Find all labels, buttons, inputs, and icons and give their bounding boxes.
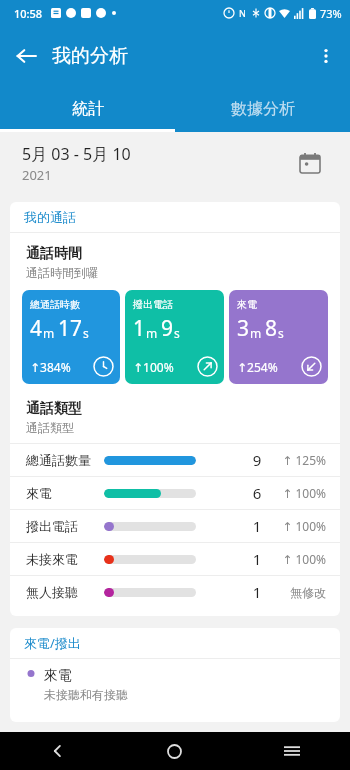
staticText: 1 bbox=[246, 582, 268, 602]
staticText: 撥出電話 bbox=[26, 518, 104, 534]
staticText: 9 bbox=[161, 314, 174, 343]
staticText: 總通話時數 bbox=[30, 298, 80, 311]
staticText: 73% bbox=[320, 6, 342, 21]
staticText: ↑ 100% bbox=[274, 518, 326, 534]
staticText: s bbox=[83, 325, 89, 341]
staticText: 5月 03 - 5月 10 bbox=[22, 143, 131, 165]
staticText: m bbox=[146, 325, 161, 341]
staticText: 通話類型 bbox=[26, 420, 74, 435]
button[interactable]: Recent apps bbox=[233, 732, 350, 770]
button[interactable]: Back bbox=[0, 30, 52, 82]
staticText: 4 bbox=[30, 314, 43, 343]
staticText: 8 bbox=[265, 314, 278, 343]
button[interactable]: Back bbox=[0, 732, 116, 770]
staticText: 來電 bbox=[237, 298, 257, 311]
staticText: 10:58 bbox=[14, 6, 43, 21]
staticText: 來電 bbox=[26, 485, 104, 501]
staticText: 1 bbox=[246, 516, 268, 536]
staticText: m bbox=[250, 325, 265, 341]
staticText: 無修改 bbox=[274, 585, 326, 600]
staticText: 來電/撥出 bbox=[24, 634, 81, 652]
staticText: ↑100% bbox=[133, 359, 174, 375]
staticText: 通話類型 bbox=[26, 400, 82, 418]
button[interactable]: 統計 bbox=[0, 86, 175, 132]
button[interactable]: Home bbox=[116, 732, 233, 770]
staticText: 1 bbox=[133, 314, 146, 343]
staticText: 撥出電話 bbox=[133, 298, 173, 311]
staticText: 統計 bbox=[72, 99, 104, 119]
button[interactable]: 數據分析 bbox=[175, 86, 350, 132]
staticText: 總通話數量 bbox=[26, 452, 104, 468]
staticText: ↑ 100% bbox=[274, 551, 326, 567]
staticText: 2021 bbox=[22, 166, 52, 184]
button[interactable]: 來電 bbox=[10, 477, 340, 509]
staticText: 3 bbox=[237, 314, 250, 343]
staticText: s bbox=[174, 325, 180, 341]
button[interactable]: 總通話數量 bbox=[10, 444, 340, 476]
staticText: 通話時間 bbox=[26, 245, 82, 263]
button[interactable]: 無人接聽 bbox=[10, 576, 340, 608]
staticText: 17 bbox=[58, 314, 83, 343]
staticText: 1 bbox=[246, 549, 268, 569]
staticText: 未接來電 bbox=[26, 551, 104, 567]
staticText: ↑ 100% bbox=[274, 485, 326, 501]
button[interactable]: 未接來電 bbox=[10, 543, 340, 575]
staticText: 數據分析 bbox=[231, 99, 295, 119]
staticText: 我的通話 bbox=[24, 209, 76, 225]
staticText: 未接聽和有接聽 bbox=[44, 687, 128, 702]
staticText: 6 bbox=[246, 483, 268, 503]
staticText: s bbox=[278, 325, 284, 341]
staticText: ↑ 125% bbox=[274, 452, 326, 468]
staticText: ↑254% bbox=[237, 359, 278, 375]
staticText: 來電 bbox=[44, 667, 72, 685]
staticText: 無人接聽 bbox=[26, 584, 104, 600]
staticText: 我的分析 bbox=[52, 44, 128, 68]
button[interactable]: 撥出電話 bbox=[125, 290, 224, 384]
staticText: ↑384% bbox=[30, 359, 71, 375]
button[interactable]: 總通話時數 bbox=[22, 290, 120, 384]
staticText: N bbox=[239, 7, 246, 19]
button[interactable]: 撥出電話 bbox=[10, 510, 340, 542]
staticText: 通話時間到囉 bbox=[26, 265, 98, 280]
staticText: 9 bbox=[246, 450, 268, 470]
button[interactable]: 來電 bbox=[229, 290, 328, 384]
button[interactable]: More options bbox=[302, 32, 350, 80]
button[interactable]: Select date range bbox=[292, 145, 328, 181]
staticText: m bbox=[43, 325, 58, 341]
